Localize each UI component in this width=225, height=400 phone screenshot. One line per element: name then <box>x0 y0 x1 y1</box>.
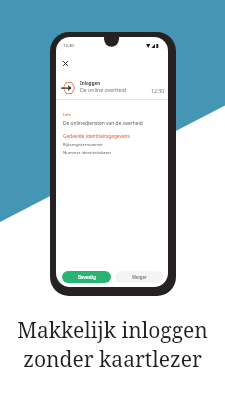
staticText: De online overheid <box>80 86 126 93</box>
button[interactable]: Bevestig <box>62 271 111 283</box>
staticText: Rijksregisternummer <box>63 142 103 148</box>
staticText: Gedeelde identiteitsgegevens <box>63 133 130 140</box>
staticText: Bevestig <box>78 274 96 280</box>
staticText: Makkelijk inloggen <box>17 316 208 345</box>
staticText: Inloggen <box>80 80 101 86</box>
staticText: Weiger <box>132 274 147 280</box>
staticText: 12:30 <box>63 43 74 49</box>
button[interactable]: Weiger <box>115 271 163 283</box>
staticText: zonder kaartlezer <box>23 345 202 374</box>
staticText: Info <box>63 112 71 118</box>
staticText: Nummer identiteitskaart <box>63 150 112 156</box>
staticText: De onlinediensten van de overheid <box>63 120 143 127</box>
staticText: 12:30 <box>151 87 165 94</box>
button[interactable]: Sluiten <box>63 61 68 66</box>
